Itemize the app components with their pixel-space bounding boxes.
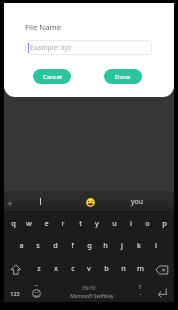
button[interactable]: b [98, 260, 114, 276]
staticText: j [121, 240, 123, 250]
staticText: u [112, 218, 117, 228]
staticText: 123 [10, 290, 20, 297]
button[interactable]: a [13, 237, 29, 253]
button[interactable]: 123 [0, 286, 35, 300]
staticText: Cancel [43, 73, 62, 81]
staticText: k [137, 240, 141, 250]
button[interactable]: l [148, 237, 164, 253]
button[interactable]: i [123, 215, 139, 231]
button[interactable]: c [65, 260, 81, 276]
staticText: o [145, 218, 150, 228]
button[interactable] [155, 265, 169, 275]
button[interactable]: w [21, 215, 37, 231]
staticText: s [36, 240, 40, 250]
staticText: e [44, 218, 49, 228]
staticText: m [137, 263, 144, 273]
button[interactable]: Done [104, 69, 142, 84]
button[interactable]: q [5, 215, 21, 231]
staticText: + [7, 197, 13, 210]
button[interactable]: Example: xyz [25, 40, 152, 55]
staticText: EN·HD [82, 285, 96, 291]
button[interactable]: j [114, 237, 130, 253]
staticText: y [95, 218, 99, 228]
staticText: c [71, 263, 75, 273]
button[interactable]: v [81, 260, 97, 276]
staticText: Example: xyz [30, 43, 72, 52]
button[interactable]: p [156, 215, 172, 231]
button[interactable]: Cancel [33, 69, 71, 84]
button[interactable]: + [0, 196, 30, 210]
button[interactable]: y [89, 215, 105, 231]
staticText: Done [115, 73, 131, 81]
staticText: x [54, 263, 58, 273]
button[interactable]: r [55, 215, 71, 231]
button[interactable] [156, 287, 168, 298]
staticText: p [162, 218, 167, 228]
staticText: l [155, 240, 157, 250]
button[interactable]: f [64, 237, 80, 253]
button[interactable]: z [31, 260, 47, 276]
button[interactable]: k [131, 237, 147, 253]
button[interactable]: m [132, 260, 148, 276]
staticText: h [103, 240, 108, 250]
button[interactable] [32, 289, 41, 298]
staticText: v [87, 263, 91, 273]
button[interactable]: u [106, 215, 122, 231]
button[interactable] [10, 264, 22, 275]
staticText: w [26, 218, 32, 228]
button[interactable]: g [81, 237, 97, 253]
button[interactable] [86, 198, 95, 207]
button[interactable]: h [97, 237, 113, 253]
button[interactable]: s [30, 237, 46, 253]
staticText: f [71, 240, 74, 250]
staticText: g [87, 240, 92, 250]
staticText: Microsoft SwiftKey [70, 293, 114, 300]
staticText: n [121, 263, 126, 273]
staticText: b [104, 263, 109, 273]
staticText: d [53, 240, 58, 250]
button[interactable]: EN·HD [59, 284, 119, 292]
staticText: a [19, 240, 24, 250]
button[interactable]: e [38, 215, 54, 231]
staticText: q [11, 218, 16, 228]
button[interactable]: o [139, 215, 155, 231]
staticText: File Name [25, 22, 61, 32]
staticText: i [130, 218, 132, 228]
staticText: z [37, 263, 41, 273]
button[interactable]: ?! [120, 280, 160, 294]
button[interactable]: n [115, 260, 131, 276]
staticText: r [61, 218, 65, 228]
button[interactable]: t [72, 215, 88, 231]
button[interactable]: d [47, 237, 63, 253]
staticText: t [79, 218, 82, 228]
button[interactable]: x [48, 260, 64, 276]
staticText: you [131, 197, 143, 206]
staticText: ?! [138, 284, 142, 290]
button[interactable]: you [117, 194, 157, 208]
